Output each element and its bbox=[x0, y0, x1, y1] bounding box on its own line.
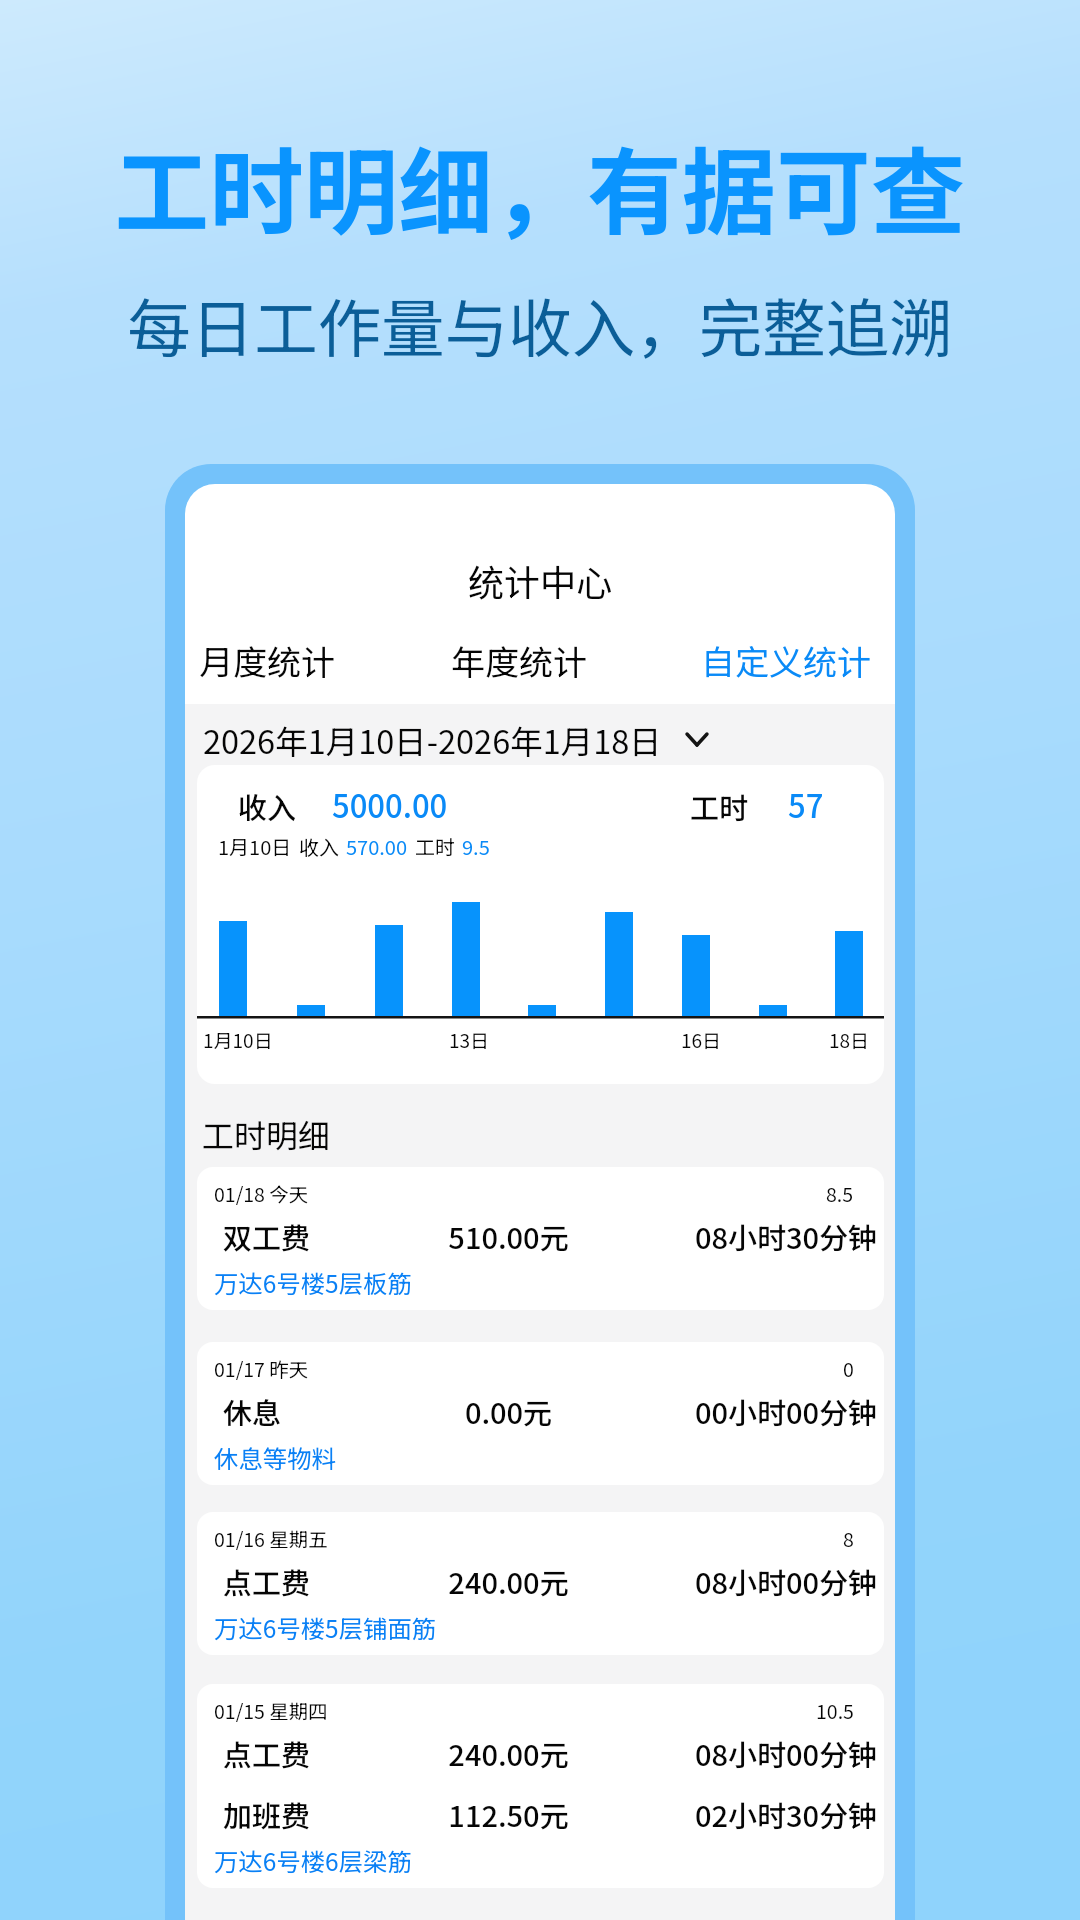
staticText: 工时明细 bbox=[202, 1111, 331, 1157]
button[interactable]: 休息等物料 bbox=[214, 1440, 336, 1475]
staticText: 5000.00 bbox=[332, 782, 448, 827]
staticText: 收入 bbox=[299, 832, 339, 861]
staticText: 01/15 星期四 bbox=[214, 1696, 328, 1724]
staticText: 02小时30分钟 bbox=[636, 1793, 877, 1835]
button[interactable]: 01/16 星期五 bbox=[197, 1512, 884, 1655]
staticText: 0.00元 bbox=[381, 1390, 636, 1432]
staticText: 01/16 星期五 bbox=[214, 1524, 328, 1552]
staticText: 8 bbox=[843, 1524, 854, 1552]
staticText: 240.00元 bbox=[381, 1732, 636, 1774]
staticText: 1月10日 bbox=[218, 832, 292, 861]
staticText: 工时明细，有据可查 bbox=[0, 117, 1080, 254]
staticText: 0 bbox=[843, 1354, 854, 1382]
staticText: 08小时00分钟 bbox=[636, 1732, 877, 1774]
button[interactable]: 万达6号楼6层梁筋 bbox=[214, 1843, 412, 1878]
button[interactable]: 万达6号楼5层板筋 bbox=[214, 1265, 412, 1300]
button[interactable]: 自定义统计 bbox=[691, 626, 881, 688]
staticText: 年度统计 bbox=[451, 636, 587, 678]
staticText: 8.5 bbox=[826, 1179, 854, 1207]
staticText: 10.5 bbox=[816, 1696, 854, 1724]
staticText: 16日 bbox=[681, 1026, 722, 1054]
staticText: 加班费 bbox=[223, 1793, 311, 1835]
staticText: 工时 bbox=[690, 785, 749, 827]
staticText: 收入 bbox=[238, 785, 297, 827]
staticText: 240.00元 bbox=[381, 1560, 636, 1602]
staticText: 双工费 bbox=[223, 1215, 311, 1257]
button[interactable]: 2026年1月10日-2026年1月18日 bbox=[185, 704, 895, 775]
staticText: 01/18 今天 bbox=[214, 1179, 309, 1207]
staticText: 点工费 bbox=[223, 1732, 311, 1774]
staticText: 570.00 bbox=[346, 832, 408, 861]
staticText: 休息 bbox=[223, 1390, 282, 1432]
staticText: 00小时00分钟 bbox=[636, 1390, 877, 1432]
staticText: 万达6号楼6层梁筋 bbox=[214, 1843, 412, 1878]
staticText: 统计中心 bbox=[185, 554, 895, 606]
button[interactable]: 01/18 今天 bbox=[197, 1167, 884, 1310]
staticText: 13日 bbox=[449, 1026, 490, 1054]
staticText: 57 bbox=[788, 782, 824, 827]
staticText: 工时 bbox=[415, 832, 455, 861]
staticText: 01/17 昨天 bbox=[214, 1354, 309, 1382]
staticText: 自定义统计 bbox=[701, 636, 871, 678]
staticText: 万达6号楼5层铺面筋 bbox=[214, 1610, 437, 1645]
staticText: 08小时30分钟 bbox=[636, 1215, 877, 1257]
staticText: 1月10日 bbox=[203, 1026, 273, 1054]
other: Choose date range bbox=[685, 732, 709, 748]
staticText: 9.5 bbox=[462, 832, 490, 861]
staticText: 月度统计 bbox=[199, 636, 335, 678]
staticText: 510.00元 bbox=[381, 1215, 636, 1257]
staticText: 18日 bbox=[829, 1026, 870, 1054]
button[interactable]: 01/15 星期四 bbox=[197, 1684, 884, 1888]
staticText: 08小时00分钟 bbox=[636, 1560, 877, 1602]
button[interactable]: 年度统计 bbox=[441, 626, 597, 688]
staticText: 2026年1月10日-2026年1月18日 bbox=[203, 716, 662, 763]
button[interactable]: 01/17 昨天 bbox=[197, 1342, 884, 1485]
staticText: 每日工作量与收入，完整追溯 bbox=[0, 278, 1080, 370]
staticText: 万达6号楼5层板筋 bbox=[214, 1265, 412, 1300]
button[interactable]: 万达6号楼5层铺面筋 bbox=[214, 1610, 437, 1645]
staticText: 休息等物料 bbox=[214, 1440, 336, 1475]
button[interactable]: 月度统计 bbox=[189, 626, 345, 688]
staticText: 112.50元 bbox=[381, 1793, 636, 1835]
staticText: 点工费 bbox=[223, 1560, 311, 1602]
